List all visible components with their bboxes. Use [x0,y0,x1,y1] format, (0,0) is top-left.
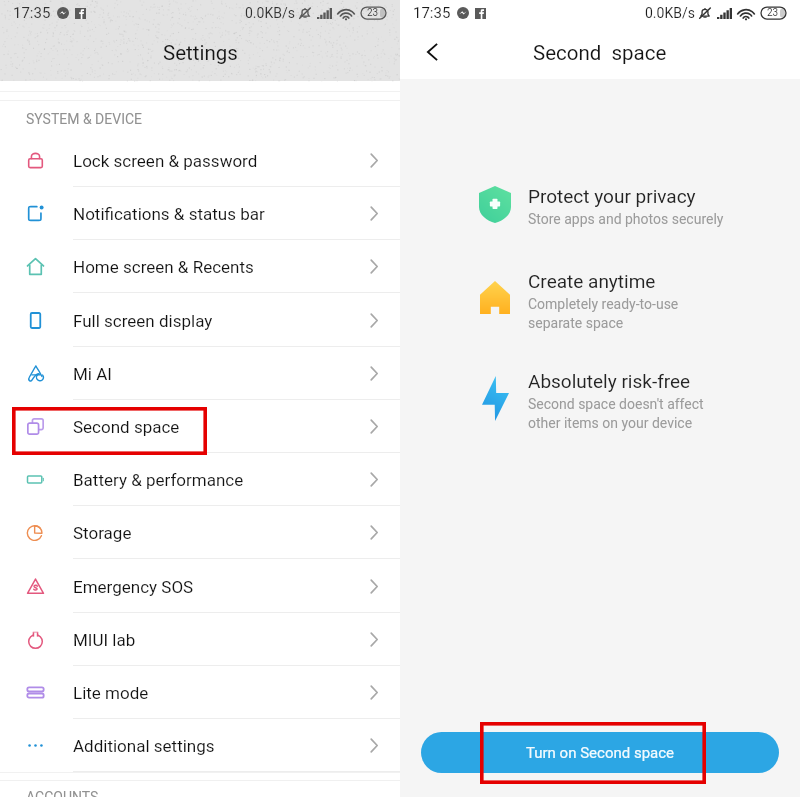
staticText: Battery & performance [73,470,244,490]
staticText: Settings [163,41,238,65]
button[interactable]: Storage [0,506,400,559]
button[interactable]: Mi AI [0,347,400,400]
staticText: Notifications & status bar [73,204,265,224]
staticText: Second space [73,417,180,437]
staticText: Additional settings [73,736,215,756]
staticText: 23 [367,7,379,19]
button[interactable]: MIUI lab [0,613,400,666]
button[interactable]: Full screen display [0,294,400,347]
button[interactable]: Second space [0,400,400,453]
staticText: separate space [528,315,624,331]
staticText: Storage [73,523,132,543]
button[interactable]: Back [417,37,447,67]
staticText: other items on your device [528,415,693,431]
staticText: Mi AI [73,364,112,384]
staticText: Protect your privacy [528,185,696,207]
staticText: Create anytime [528,270,656,292]
button[interactable]: Battery & performance [0,453,400,506]
staticText: 17:35 [413,4,451,22]
staticText: Absolutely risk-free [528,370,691,392]
staticText: Completely ready-to-use [528,296,679,312]
button[interactable]: Notifications & status bar [0,187,400,240]
staticText: Lock screen & password [73,151,258,171]
staticText: Full screen display [73,311,213,331]
staticText: 0.0KB/s [645,5,695,21]
staticText: Emergency SOS [73,577,194,597]
staticText: 0.0KB/s [245,5,295,21]
staticText: Turn on Second space [526,744,675,762]
button[interactable]: Lock screen & password [0,134,400,187]
staticText: Home screen & Recents [73,257,254,277]
staticText: Store apps and photos securely [528,211,724,227]
staticText: Second space doesn't affect [528,396,704,412]
button[interactable]: Home screen & Recents [0,240,400,293]
staticText: SYSTEM & DEVICE [26,111,143,127]
staticText: ACCOUNTS [26,789,99,797]
staticText: Lite mode [73,683,149,703]
button[interactable]: Turn on Second space [421,732,779,773]
button[interactable]: Emergency SOS [0,560,400,613]
staticText: 17:35 [13,4,51,22]
button[interactable]: Additional settings [0,719,400,772]
staticText: 23 [767,7,779,19]
staticText: Second space [533,41,667,65]
button[interactable]: Lite mode [0,666,400,719]
staticText: MIUI lab [73,630,136,650]
